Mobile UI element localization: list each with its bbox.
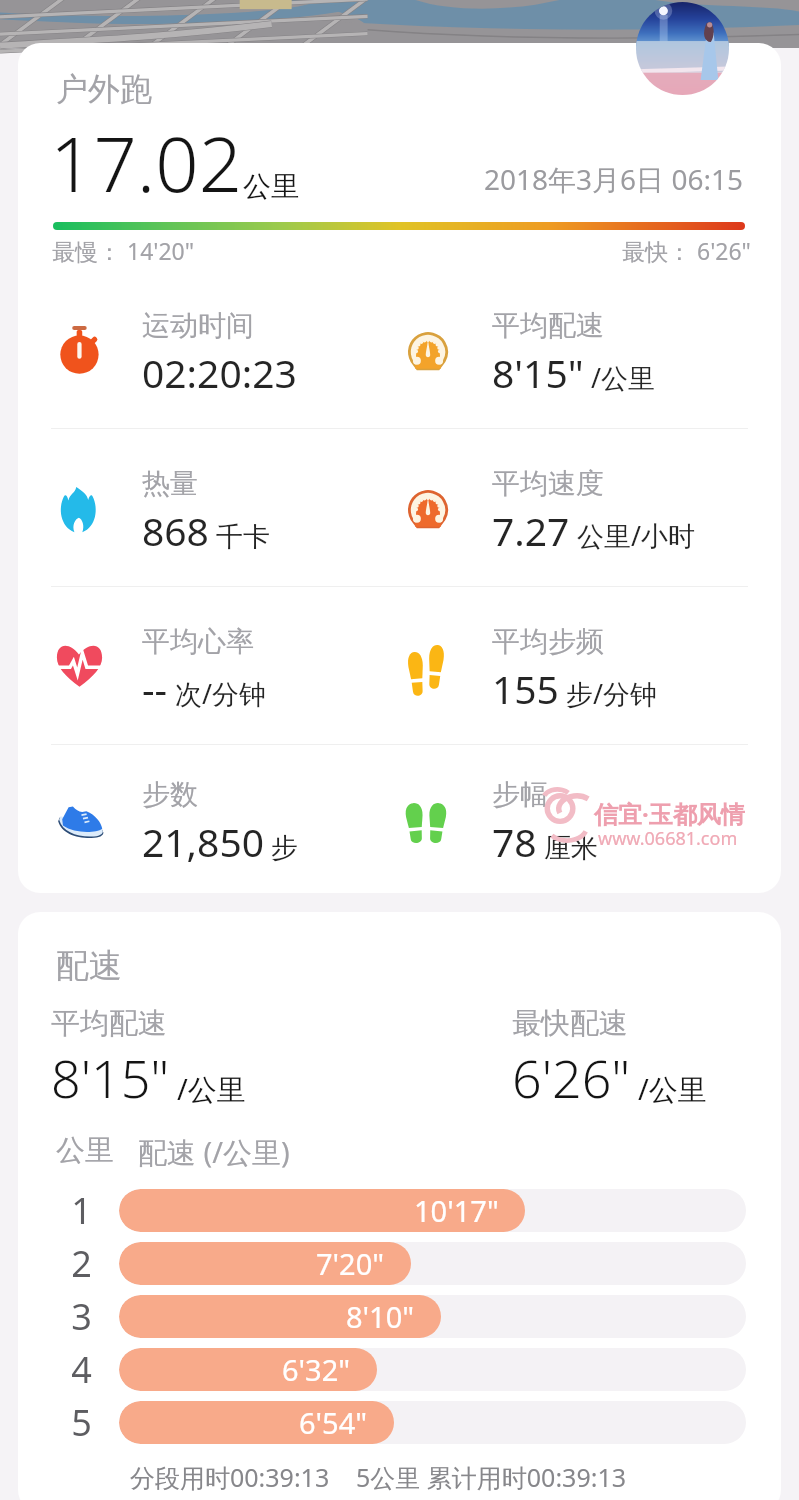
staticText: 平均步频 [492, 624, 604, 659]
staticText: 8'10" [346, 1297, 415, 1336]
staticText: 最慢： 14'20" [52, 235, 195, 266]
staticText: 10'17" [414, 1191, 499, 1230]
button[interactable]: 平均配速 [399, 271, 749, 428]
button[interactable]: 3 [18, 1290, 781, 1343]
button[interactable]: 运动时间 [49, 271, 399, 428]
staticText: 步幅 [492, 777, 548, 812]
staticText: 分段用时00:39:13 [130, 1460, 330, 1494]
staticText: 平均配速 [492, 308, 604, 343]
staticText: 公里 [243, 169, 299, 204]
staticText: 6'32" [282, 1350, 351, 1389]
button[interactable]: 2 [18, 1237, 781, 1290]
button[interactable]: 平均速度 [399, 429, 749, 586]
staticText: 配速 [56, 945, 122, 987]
staticText: 8'15" [51, 1042, 170, 1113]
button[interactable]: Profile avatar [636, 2, 729, 95]
button[interactable]: 1 [18, 1184, 781, 1237]
staticText: 步数 [142, 777, 198, 812]
staticText: 6'54" [299, 1403, 368, 1442]
staticText: 步 [271, 831, 298, 865]
staticText: 5 [44, 1398, 119, 1447]
button[interactable]: 步幅 [399, 745, 749, 892]
staticText: 运动时间 [142, 308, 254, 343]
staticText: 平均配速 [51, 1005, 167, 1042]
staticText: /公里 [591, 359, 656, 396]
staticText: 21,850 [142, 815, 264, 868]
button[interactable]: 4 [18, 1343, 781, 1396]
staticText: 公里 [56, 1132, 114, 1169]
staticText: 02:20:23 [142, 346, 297, 399]
staticText: 4 [44, 1345, 119, 1394]
staticText: 3 [44, 1292, 119, 1341]
staticText: 配速 (/公里) [138, 1132, 290, 1172]
staticText: 17.02 [50, 111, 243, 215]
button[interactable]: 步数 [49, 745, 399, 892]
staticText: www.06681.com [598, 826, 738, 851]
staticText: /公里 [638, 1069, 707, 1109]
staticText: 155 [492, 662, 559, 715]
staticText: 78 [492, 815, 537, 868]
staticText: 7'20" [316, 1244, 385, 1283]
staticText: 868 [142, 504, 209, 557]
staticText: 步/分钟 [566, 675, 658, 712]
button[interactable]: 平均步频 [399, 587, 749, 744]
staticText: 热量 [142, 466, 198, 501]
staticText: 最快配速 [512, 1005, 628, 1042]
staticText: 公里/小时 [577, 517, 696, 554]
staticText: 6'26" [512, 1042, 631, 1113]
staticText: -- [142, 662, 168, 715]
button[interactable]: 平均心率 [49, 587, 399, 744]
staticText: /公里 [177, 1069, 246, 1109]
staticText: 千卡 [216, 520, 270, 554]
staticText: 信宜·玉都风情 [594, 797, 745, 830]
staticText: 次/分钟 [175, 675, 267, 712]
staticText: 2018年3月6日 06:15 [484, 160, 743, 198]
staticText: 1 [44, 1186, 119, 1235]
staticText: 户外跑 [56, 69, 152, 109]
staticText: 5公里 累计用时00:39:13 [356, 1460, 627, 1494]
staticText: 最快： 6'26" [622, 235, 752, 266]
staticText: 2 [44, 1239, 119, 1288]
button[interactable]: 5 [18, 1396, 781, 1449]
staticText: 7.27 [492, 504, 570, 557]
staticText: 平均心率 [142, 624, 254, 659]
button[interactable]: 热量 [49, 429, 399, 586]
staticText: 8'15" [492, 346, 584, 399]
staticText: 平均速度 [492, 466, 604, 501]
staticText: 厘米 [544, 831, 598, 865]
